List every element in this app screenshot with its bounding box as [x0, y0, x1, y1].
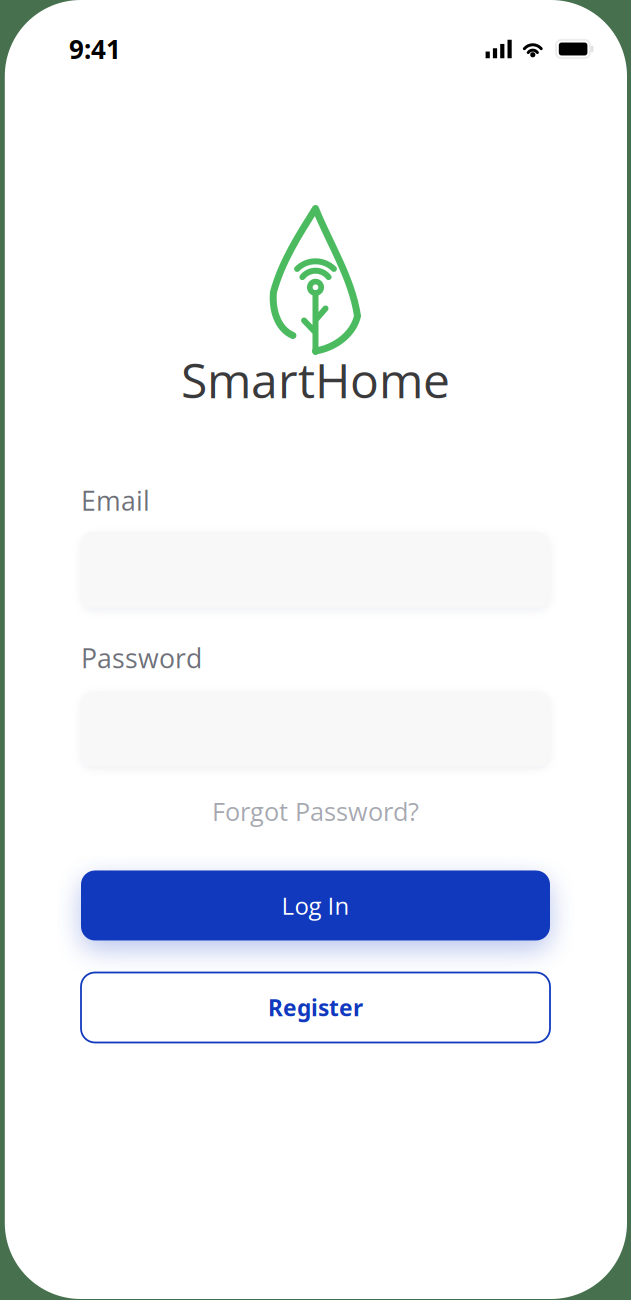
button[interactable]: Forgot Password?: [0, 780, 631, 842]
staticText: SmartHome: [181, 347, 450, 412]
staticText: Forgot Password?: [212, 794, 419, 828]
button[interactable]: Register: [81, 972, 550, 1042]
staticText: Email: [81, 482, 150, 519]
staticText: 9:41: [69, 31, 121, 67]
staticText: Log In: [281, 889, 349, 922]
staticText: Password: [81, 640, 202, 676]
staticText: Register: [268, 992, 363, 1023]
button[interactable]: Log In: [81, 870, 550, 940]
